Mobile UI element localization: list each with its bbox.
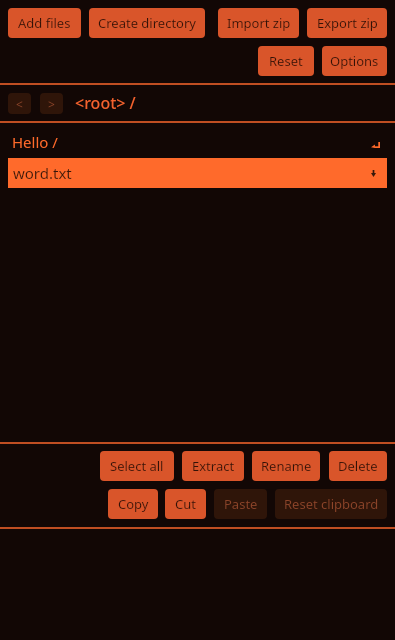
button[interactable]: Rename (252, 451, 320, 481)
button[interactable]: Hello / (0, 129, 395, 155)
button[interactable]: Create directory (89, 8, 205, 38)
button[interactable]: Copy (108, 489, 158, 519)
staticText: Import zip (227, 14, 291, 32)
staticText: Create directory (98, 14, 196, 32)
staticText: Reset clipboard (284, 495, 379, 513)
button[interactable]: Forward (40, 93, 63, 114)
staticText: > (48, 96, 55, 112)
staticText: Export zip (317, 14, 378, 32)
staticText: Delete (338, 457, 378, 475)
staticText: Add files (18, 14, 71, 32)
staticText: Reset (269, 52, 303, 70)
staticText: Cut (175, 495, 196, 513)
staticText: Options (330, 52, 379, 70)
button[interactable]: Import zip (218, 8, 299, 38)
staticText: Hello / (12, 132, 58, 152)
staticText: Copy (118, 495, 149, 513)
button[interactable]: Extract (182, 451, 244, 481)
staticText: word.txt (13, 163, 72, 183)
staticText: Paste (224, 495, 258, 513)
staticText: <root> / (75, 92, 136, 114)
button[interactable]: Options (322, 46, 387, 76)
staticText: Extract (192, 457, 235, 475)
staticText: Select all (110, 457, 164, 475)
button[interactable]: Export zip (307, 8, 387, 38)
button[interactable]: Cut (165, 489, 206, 519)
button[interactable]: Add files (8, 8, 81, 38)
button[interactable]: Paste (214, 489, 267, 519)
button[interactable]: Back (8, 93, 31, 114)
staticText: < (16, 96, 23, 112)
button[interactable]: Delete (329, 451, 387, 481)
button[interactable]: word.txt (8, 158, 387, 188)
staticText: Rename (261, 457, 312, 475)
button[interactable]: Reset clipboard (275, 489, 387, 519)
button[interactable]: Select all (100, 451, 174, 481)
button[interactable]: Reset (258, 46, 314, 76)
